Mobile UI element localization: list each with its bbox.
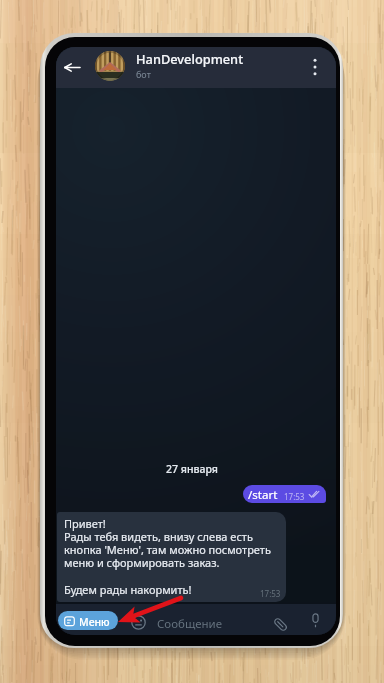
staticText: бот (136, 68, 151, 80)
staticText: Рады тебя видеть, внизу слева есть (64, 529, 253, 544)
staticText: 27 января (166, 462, 218, 476)
staticText: HanDevelopment (136, 50, 244, 67)
staticText: Привет! (64, 516, 106, 531)
button[interactable]: More options (302, 54, 328, 80)
staticText: кнопка 'Меню', там можно посмотреть (64, 542, 271, 557)
staticText: Будем рады накормить! (64, 582, 192, 597)
button[interactable]: Back (57, 52, 87, 82)
button[interactable]: Привет! (57, 512, 286, 602)
button[interactable]: Profile photo (95, 51, 125, 81)
button[interactable]: Attach file (269, 613, 291, 635)
staticText: Меню (79, 615, 110, 629)
staticText: Сообщение (157, 616, 223, 632)
button[interactable]: /start (243, 485, 326, 503)
staticText: меню и сформировать заказ. (64, 555, 220, 570)
staticText: /start (248, 487, 278, 503)
button[interactable]: Voice message (304, 609, 326, 631)
staticText: 17:53 (260, 588, 281, 599)
button[interactable]: Меню (58, 611, 118, 630)
staticText: 17:53 (284, 491, 305, 502)
button[interactable]: Emoji (127, 611, 149, 633)
